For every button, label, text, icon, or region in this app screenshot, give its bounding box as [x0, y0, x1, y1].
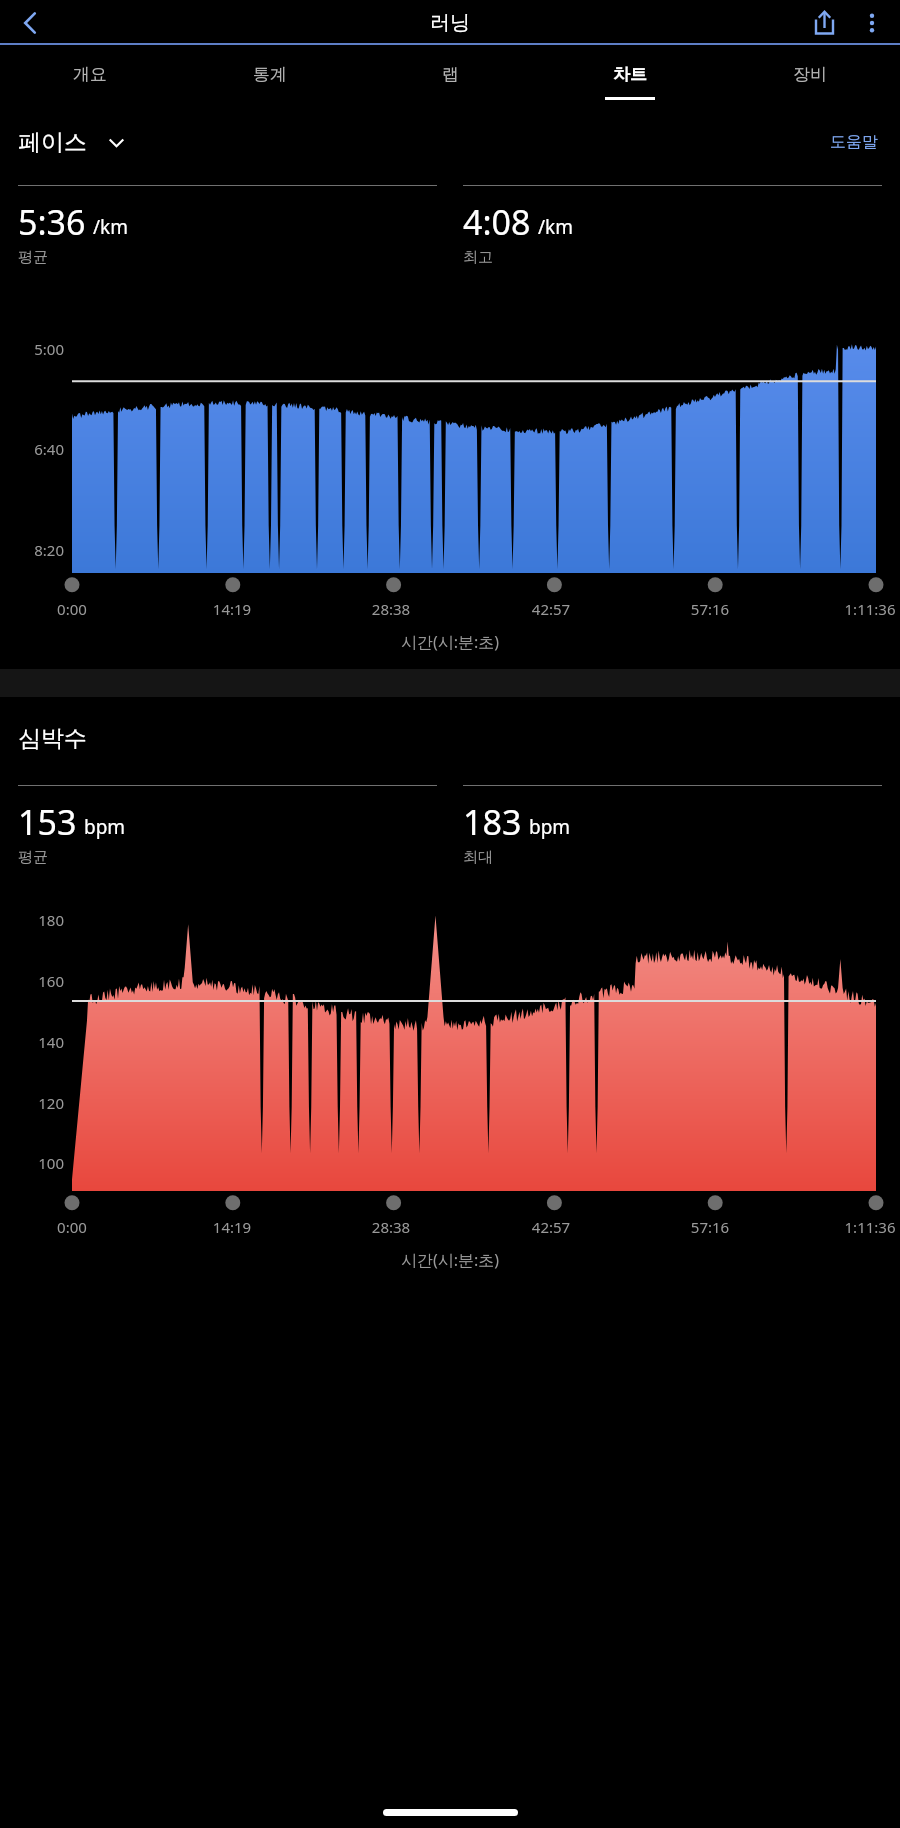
button[interactable]: 장비 [720, 45, 900, 103]
staticText: 5:36 [18, 199, 86, 245]
staticText: /km [538, 214, 573, 240]
staticText: 120 [14, 1093, 64, 1113]
staticText: 평균 [18, 248, 48, 267]
staticText: 개요 [73, 64, 107, 85]
staticText: 42:57 [523, 1217, 579, 1237]
staticText: 28:38 [363, 1217, 419, 1237]
staticText: 183 [463, 799, 522, 845]
button[interactable]: 개요 [0, 45, 180, 103]
button[interactable]: 차트 [540, 45, 720, 103]
staticText: 최대 [463, 848, 493, 867]
staticText: 평균 [18, 848, 48, 867]
button[interactable]: More options [848, 0, 896, 45]
staticText: 14:19 [204, 1217, 260, 1237]
button[interactable]: 도움말 [826, 126, 882, 158]
staticText: 8:20 [14, 540, 64, 560]
staticText: 도움말 [830, 132, 878, 152]
staticText: 0:00 [44, 1217, 100, 1237]
staticText: 14:19 [204, 599, 260, 619]
staticText: 57:16 [682, 599, 738, 619]
staticText: 통계 [253, 64, 287, 85]
staticText: 140 [14, 1032, 64, 1052]
staticText: 153 [18, 799, 77, 845]
staticText: 160 [14, 971, 64, 991]
staticText: 시간(시:분:초) [0, 1249, 900, 1271]
staticText: 28:38 [363, 599, 419, 619]
staticText: 57:16 [682, 1217, 738, 1237]
staticText: 장비 [793, 64, 827, 85]
staticText: 1:11:36 [842, 1217, 898, 1237]
staticText: /km [93, 214, 128, 240]
staticText: 랩 [442, 64, 459, 85]
button[interactable]: 통계 [180, 45, 360, 103]
button[interactable]: Back [8, 1, 52, 45]
button[interactable]: 랩 [360, 45, 540, 103]
staticText: 42:57 [523, 599, 579, 619]
staticText: bpm [529, 814, 571, 840]
staticText: 최고 [463, 248, 493, 267]
button[interactable]: Share [800, 0, 848, 45]
staticText: 차트 [613, 64, 647, 85]
staticText: 러닝 [430, 10, 470, 35]
staticText: bpm [84, 814, 126, 840]
staticText: 시간(시:분:초) [0, 631, 900, 653]
staticText: 페이스 [18, 128, 87, 157]
staticText: 6:40 [14, 439, 64, 459]
staticText: 180 [14, 910, 64, 930]
staticText: 0:00 [44, 599, 100, 619]
staticText: 4:08 [463, 199, 531, 245]
staticText: 5:00 [14, 339, 64, 359]
button[interactable]: Change metric [101, 127, 131, 157]
staticText: 100 [14, 1153, 64, 1173]
staticText: 심박수 [18, 724, 87, 753]
staticText: 1:11:36 [842, 599, 898, 619]
